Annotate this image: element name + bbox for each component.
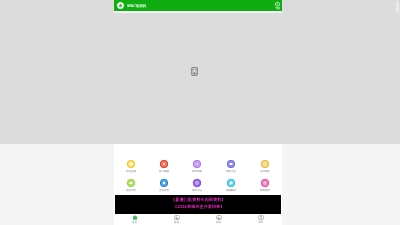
button[interactable]: 视频解码 [214, 179, 248, 192]
button[interactable]: 跑狗图库 [248, 179, 282, 192]
staticText: 首页 [132, 220, 138, 223]
button[interactable]: 开奖直播 [114, 160, 147, 173]
staticText: 正版资料 [159, 189, 169, 192]
staticText: 下载 [275, 7, 280, 10]
staticText: 记录 [258, 220, 264, 223]
button[interactable]: 热门视频 [147, 160, 180, 173]
other: Image placeholder [191, 67, 198, 76]
staticText: 【2024香港历史开奖结果】 [173, 204, 225, 210]
button[interactable]: 生肖图库 [248, 160, 282, 173]
button[interactable]: 正版资料 [147, 179, 180, 192]
button[interactable]: 【新澳门彩资料今内部资料】 [115, 195, 281, 214]
button[interactable]: 资料大全 [214, 160, 248, 173]
staticText: 生肖图库 [260, 170, 270, 173]
button[interactable]: 资料 [198, 214, 240, 225]
button[interactable]: 高手预测 [180, 160, 214, 173]
staticText: 【新澳门彩资料今内部资料】 [171, 197, 226, 202]
button[interactable]: 开奖记录 [114, 179, 147, 192]
button[interactable]: 下载 App [275, 1, 280, 10]
other: Logo [117, 2, 124, 9]
staticText: 开奖直播 [126, 170, 136, 173]
staticText: 高手预测 [192, 170, 202, 173]
button[interactable]: 高手论坛 [180, 179, 214, 192]
staticText: 跑狗图库 [260, 189, 270, 192]
staticText: 直播 [174, 220, 180, 223]
staticText: 热门视频 [159, 170, 169, 173]
staticText: 高手论坛 [192, 189, 202, 192]
button[interactable]: 首页 [114, 214, 156, 225]
staticText: 新澳门彩资料 [127, 4, 147, 8]
button[interactable]: 直播 [156, 214, 198, 225]
staticText: 开奖记录 [126, 189, 136, 192]
button[interactable]: 记录 [240, 214, 282, 225]
staticText: 视频解码 [226, 189, 236, 192]
staticText: 资料 [216, 220, 222, 223]
staticText: 资料大全 [226, 170, 236, 173]
